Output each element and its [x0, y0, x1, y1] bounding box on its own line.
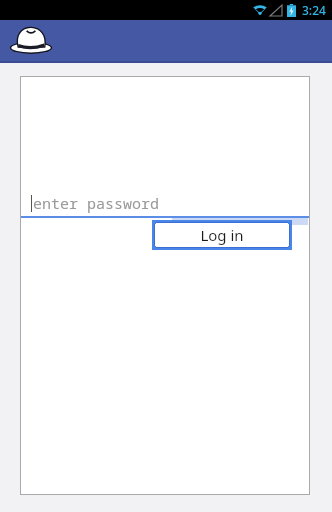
staticText: 3:24: [302, 2, 326, 18]
button[interactable]: Log in: [152, 220, 292, 250]
button[interactable]: enter password: [20, 190, 310, 218]
staticText: Log in: [200, 225, 244, 245]
other: App logo: [9, 26, 53, 56]
staticText: enter password: [33, 193, 160, 213]
